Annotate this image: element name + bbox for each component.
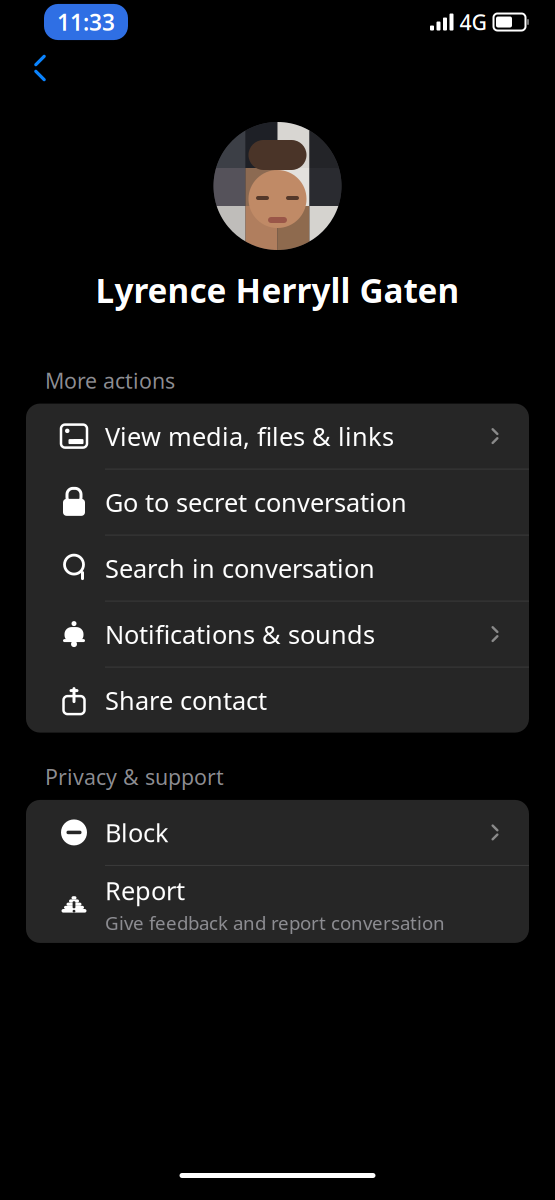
staticText: View media, files & links	[105, 419, 394, 453]
staticText: Notifications & sounds	[105, 617, 375, 651]
staticText: Go to secret conversation	[105, 485, 407, 519]
button[interactable]: View media, files & links	[26, 404, 529, 469]
staticText: Block	[105, 816, 169, 849]
staticText: Give feedback and report conversation	[105, 910, 445, 935]
staticText: Share contact	[105, 683, 267, 717]
button[interactable]: Share contact	[26, 668, 529, 733]
staticText: Report	[105, 874, 185, 907]
staticText: More actions	[45, 366, 175, 395]
staticText: 11:33	[57, 7, 115, 37]
button[interactable]: Go to secret conversation	[26, 470, 529, 535]
button[interactable]: Report	[26, 866, 529, 943]
button[interactable]: Block	[26, 800, 529, 865]
staticText: Search in conversation	[105, 551, 375, 585]
staticText: Lyrence Herryll Gaten	[95, 268, 459, 312]
button[interactable]: Search in conversation	[26, 536, 529, 601]
button[interactable]: Notifications & sounds	[26, 602, 529, 667]
staticText: 4G	[459, 8, 487, 36]
button[interactable]: Back	[14, 45, 66, 91]
staticText: Privacy & support	[45, 763, 224, 791]
